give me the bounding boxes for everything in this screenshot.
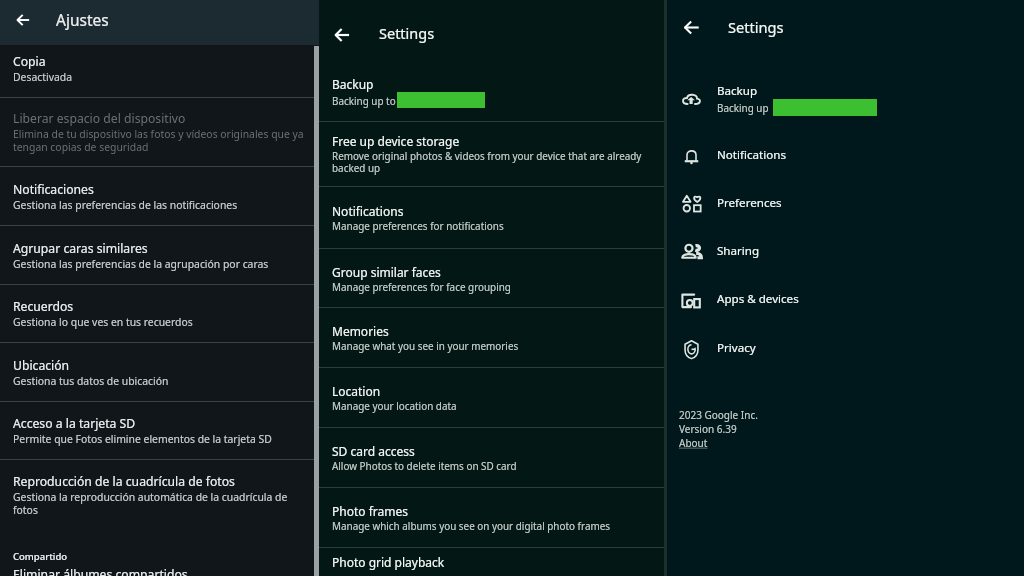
staticText: Manage preferences for face grouping xyxy=(332,280,511,293)
staticText: 2023 Google Inc. xyxy=(679,408,758,422)
staticText: Copia xyxy=(13,53,46,70)
button[interactable]: Back xyxy=(677,13,705,41)
staticText: Notifications xyxy=(717,147,786,163)
button[interactable]: Preferences xyxy=(666,182,1024,228)
staticText: Manage what you see in your memories xyxy=(332,339,519,352)
button[interactable]: Notifications xyxy=(319,187,666,248)
staticText: Sharing xyxy=(717,243,760,259)
staticText: Backing up xyxy=(717,101,769,114)
button[interactable]: Apps & devices xyxy=(666,278,1024,324)
staticText: Elimina de tu dispositivo las fotos y ví… xyxy=(13,127,305,154)
staticText: Desactivada xyxy=(13,70,72,84)
button[interactable]: Sharing xyxy=(666,230,1024,276)
button[interactable]: Group similar faces xyxy=(319,249,666,307)
button[interactable]: Eliminar álbumes compartidos xyxy=(0,564,314,576)
staticText: Gestiona lo que ves en tus recuerdos xyxy=(13,315,193,329)
button[interactable]: Notifications xyxy=(666,134,1024,180)
staticText: Settings xyxy=(379,23,435,43)
staticText: Gestiona tus datos de ubicación xyxy=(13,374,169,388)
button[interactable]: Reproducción de la cuadrícula de fotos xyxy=(0,460,314,530)
button[interactable]: Agrupar caras similares xyxy=(0,226,314,284)
button[interactable]: SD card access xyxy=(319,428,666,487)
button[interactable]: Ubicación xyxy=(0,343,314,401)
staticText: Notificaciones xyxy=(13,181,94,198)
staticText: SD card access xyxy=(332,443,415,459)
staticText: Eliminar álbumes compartidos xyxy=(13,566,188,576)
staticText: Backup xyxy=(332,76,374,92)
staticText: Notifications xyxy=(332,203,404,219)
staticText: Free up device storage xyxy=(332,133,460,149)
staticText: Acceso a la tarjeta SD xyxy=(13,415,136,432)
staticText: Photo frames xyxy=(332,503,408,519)
staticText: Backup xyxy=(717,83,758,99)
button[interactable]: Memories xyxy=(319,308,666,367)
staticText: Allow Photos to delete items on SD card xyxy=(332,459,517,472)
button[interactable]: Copia xyxy=(0,45,314,97)
staticText: Remove original photos & videos from you… xyxy=(332,149,657,175)
staticText: Gestiona la reproducción automática de l… xyxy=(13,490,305,517)
staticText: Permite que Fotos elimine elementos de l… xyxy=(13,432,272,446)
staticText: Compartido xyxy=(13,550,68,563)
button[interactable]: Backup xyxy=(319,60,666,121)
staticText: Preferences xyxy=(717,195,782,211)
staticText: Agrupar caras similares xyxy=(13,240,148,257)
staticText: Manage which albums you see on your digi… xyxy=(332,519,610,532)
staticText: Manage preferences for notifications xyxy=(332,219,504,232)
staticText: Liberar espacio del dispositivo xyxy=(13,110,186,127)
button[interactable]: Location xyxy=(319,368,666,427)
staticText: Location xyxy=(332,383,381,399)
button[interactable]: About xyxy=(679,436,708,450)
staticText: Gestiona las preferencias de las notific… xyxy=(13,198,238,212)
staticText: Privacy xyxy=(717,340,756,356)
button[interactable]: Acceso a la tarjeta SD xyxy=(0,402,314,459)
staticText: Ubicación xyxy=(13,357,70,374)
staticText: Version 6.39 xyxy=(679,422,737,436)
staticText: Settings xyxy=(728,17,784,37)
staticText: Photo grid playback xyxy=(332,554,445,570)
staticText: Gestiona las preferencias de la agrupaci… xyxy=(13,257,269,271)
staticText: Manage your location data xyxy=(332,399,457,412)
staticText: Ajustes xyxy=(56,9,109,30)
button[interactable]: Privacy xyxy=(666,327,1024,373)
staticText: Group similar faces xyxy=(332,264,441,280)
button[interactable]: Recuerdos xyxy=(0,285,314,342)
staticText: Recuerdos xyxy=(13,298,74,315)
button[interactable]: Notificaciones xyxy=(0,167,314,225)
button[interactable]: Free up device storage xyxy=(319,122,666,186)
button[interactable]: Back xyxy=(327,20,357,50)
staticText: Apps & devices xyxy=(717,291,799,307)
button[interactable]: Liberar espacio del dispositivo xyxy=(0,98,314,166)
button[interactable]: Photo grid playback xyxy=(319,548,666,576)
staticText: Backing up to xyxy=(332,94,396,107)
button[interactable]: Backup xyxy=(666,78,1024,122)
button[interactable]: Photo frames xyxy=(319,488,666,547)
staticText: Reproducción de la cuadrícula de fotos xyxy=(13,473,235,490)
staticText: Memories xyxy=(332,323,389,339)
button[interactable]: Back xyxy=(9,6,37,34)
